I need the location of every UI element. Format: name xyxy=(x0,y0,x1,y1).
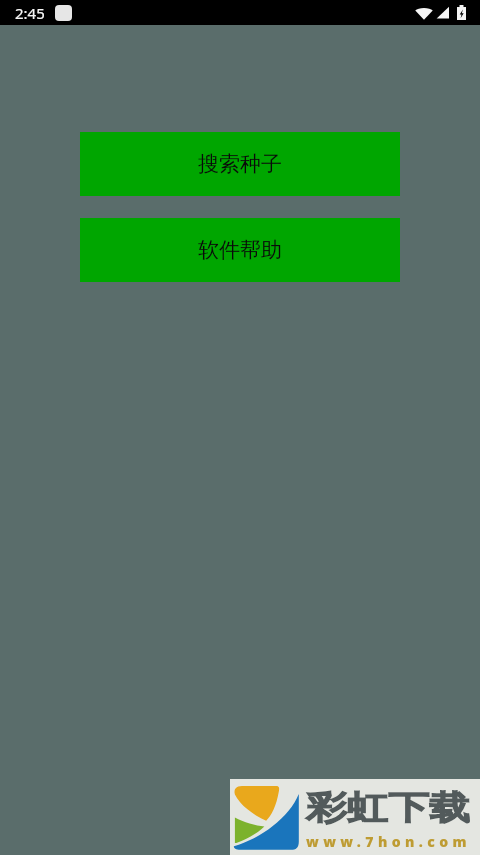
other: 彩虹下载 logo xyxy=(231,782,302,853)
staticText: 软件帮助 xyxy=(198,237,282,263)
staticText: www.7hon.com xyxy=(306,832,471,851)
button[interactable]: 搜索种子 xyxy=(80,132,400,196)
other: Wi-Fi signal xyxy=(415,6,433,20)
other: Mobile signal xyxy=(436,6,449,19)
staticText: 搜索种子 xyxy=(198,151,282,177)
button[interactable]: 软件帮助 xyxy=(80,218,400,282)
other: Battery charging xyxy=(457,5,466,20)
staticText: 2:45 xyxy=(15,3,45,23)
staticText: 彩虹下载 xyxy=(306,788,470,830)
